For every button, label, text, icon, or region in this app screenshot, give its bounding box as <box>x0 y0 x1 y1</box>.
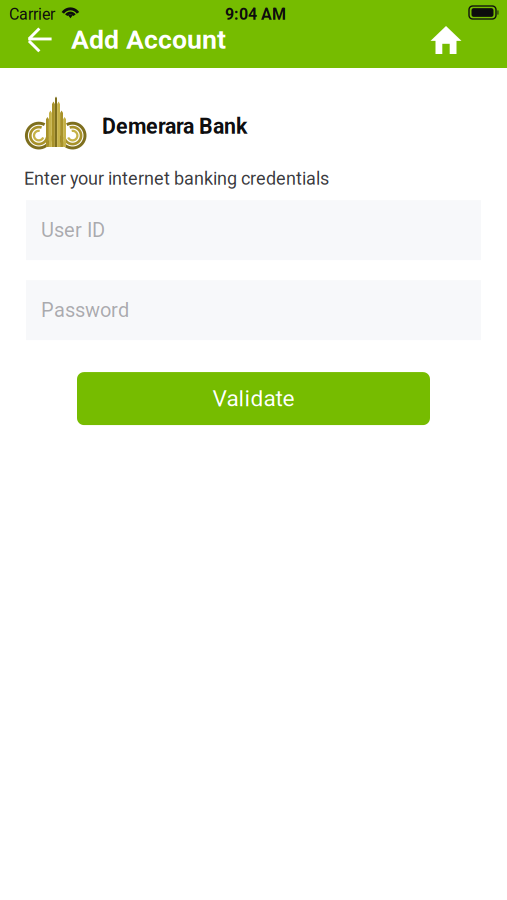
staticText: Demerara Bank <box>102 114 247 139</box>
button[interactable]: Home <box>424 18 468 62</box>
staticText: Add Account <box>71 24 226 55</box>
staticText: Password <box>41 298 129 322</box>
staticText: Carrier <box>9 5 55 24</box>
staticText: User ID <box>41 218 105 242</box>
button[interactable]: Validate <box>77 372 430 425</box>
staticText: Validate <box>212 385 294 412</box>
button[interactable]: Password <box>26 280 481 340</box>
staticText: 9:04 AM <box>225 5 286 24</box>
button[interactable]: Back <box>16 18 62 62</box>
button[interactable]: User ID <box>26 200 481 260</box>
staticText: Enter your internet banking credentials <box>24 168 329 189</box>
